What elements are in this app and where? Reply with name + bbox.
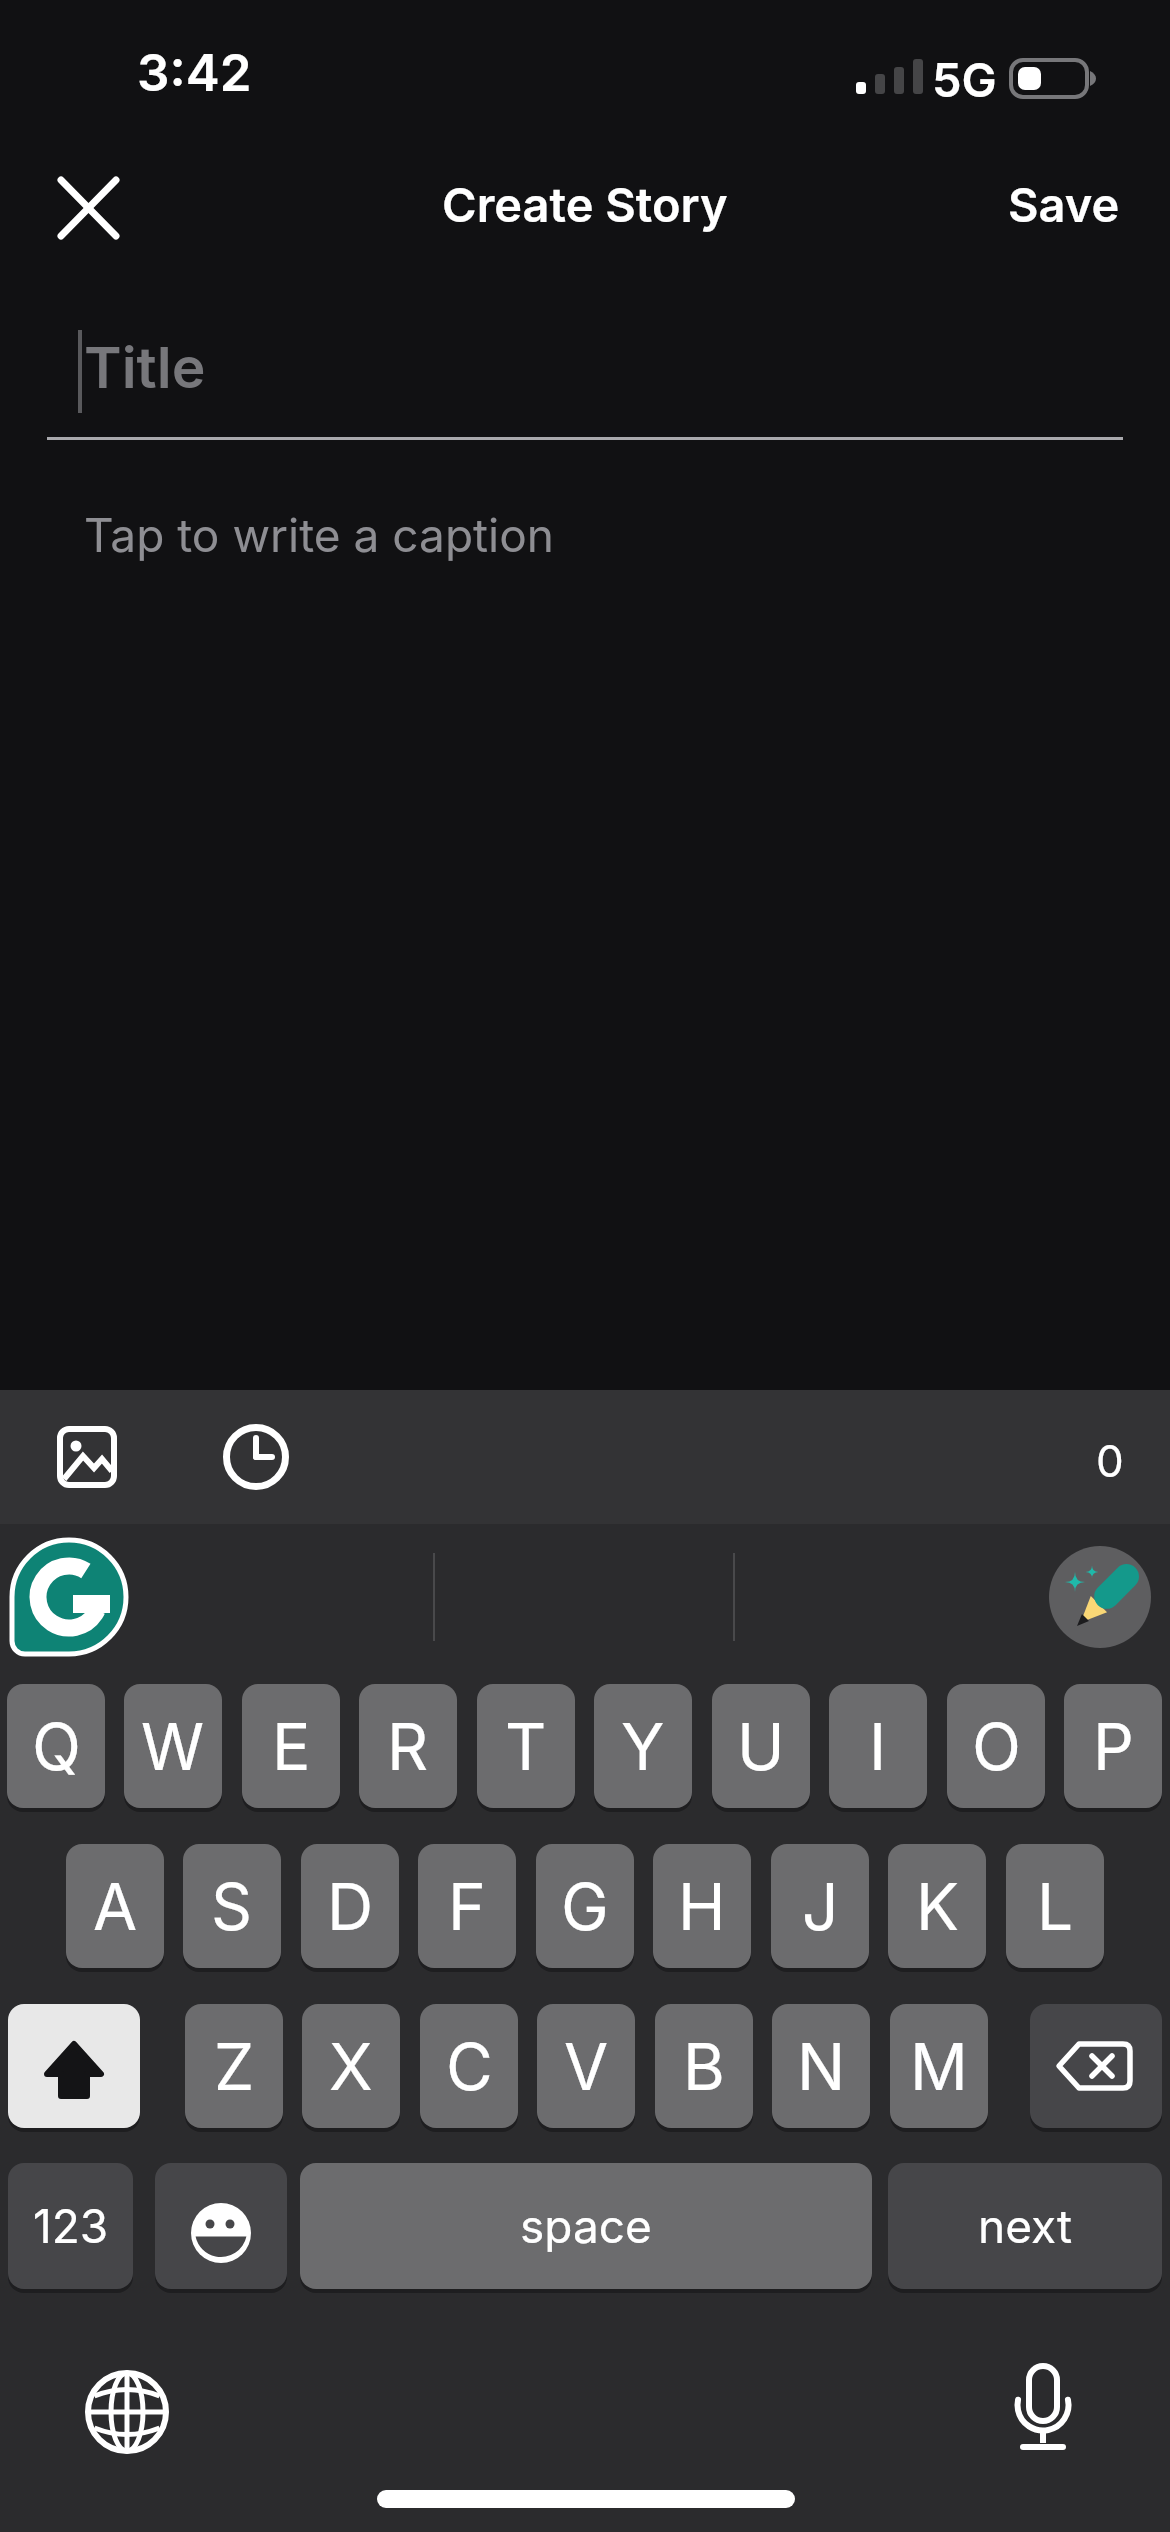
staticText: B <box>683 2028 725 2105</box>
button[interactable]: next <box>888 2163 1162 2289</box>
button[interactable] <box>30 1408 144 1506</box>
button[interactable]: M <box>890 2004 988 2128</box>
staticText: 123 <box>33 2198 109 2254</box>
staticText: X <box>329 2028 373 2105</box>
staticText: O <box>972 1708 1021 1785</box>
button[interactable]: A <box>66 1844 164 1968</box>
staticText: P <box>1093 1708 1134 1785</box>
button[interactable]: C <box>420 2004 518 2128</box>
staticText: 3:42 <box>137 42 252 104</box>
staticText: 5G <box>932 51 997 108</box>
staticText: F <box>448 1868 486 1945</box>
button[interactable]: R <box>359 1684 457 1808</box>
button[interactable] <box>1049 1546 1151 1648</box>
button[interactable]: E <box>242 1684 340 1808</box>
staticText: Create Story <box>442 176 728 233</box>
button[interactable]: P <box>1064 1684 1162 1808</box>
button[interactable]: V <box>537 2004 635 2128</box>
button[interactable]: G <box>536 1844 634 1968</box>
button[interactable]: Q <box>7 1684 105 1808</box>
button[interactable]: B <box>655 2004 753 2128</box>
button[interactable]: 123 <box>8 2163 133 2289</box>
staticText: E <box>272 1708 311 1785</box>
staticText: J <box>802 1868 839 1945</box>
button[interactable] <box>988 2353 1098 2463</box>
button[interactable]: Y <box>594 1684 692 1808</box>
button[interactable] <box>72 2357 182 2467</box>
staticText: next <box>978 2198 1073 2254</box>
button[interactable]: Save <box>1008 176 1120 233</box>
staticText: A <box>93 1868 138 1945</box>
button[interactable]: S <box>183 1844 281 1968</box>
button[interactable]: K <box>888 1844 986 1968</box>
button[interactable]: T <box>477 1684 575 1808</box>
staticText: V <box>564 2028 609 2105</box>
staticText: Q <box>32 1708 81 1785</box>
staticText: R <box>387 1708 429 1785</box>
button[interactable]: W <box>124 1684 222 1808</box>
staticText: K <box>916 1868 959 1945</box>
staticText: W <box>141 1708 205 1785</box>
staticText: D <box>327 1868 374 1945</box>
button[interactable]: Tap to write a caption <box>84 507 554 563</box>
staticText: C <box>446 2028 493 2105</box>
staticText: Title <box>84 333 206 402</box>
button[interactable] <box>196 1408 316 1506</box>
staticText: S <box>211 1868 253 1945</box>
button[interactable]: I <box>829 1684 927 1808</box>
button[interactable]: N <box>772 2004 870 2128</box>
staticText: space <box>520 2198 652 2254</box>
button[interactable]: J <box>771 1844 869 1968</box>
staticText: 0 <box>1096 1434 1124 1487</box>
staticText: G <box>561 1868 609 1945</box>
staticText: I <box>869 1708 887 1785</box>
button[interactable]: space <box>300 2163 872 2289</box>
button[interactable] <box>8 2004 140 2128</box>
button[interactable]: L <box>1006 1844 1104 1968</box>
button[interactable] <box>1030 2004 1162 2128</box>
staticText: M <box>910 2028 968 2105</box>
staticText: Y <box>621 1708 665 1785</box>
button[interactable]: O <box>947 1684 1045 1808</box>
button[interactable]: U <box>712 1684 810 1808</box>
button[interactable] <box>45 165 131 251</box>
staticText: N <box>797 2028 846 2105</box>
button[interactable]: X <box>302 2004 400 2128</box>
button[interactable]: D <box>301 1844 399 1968</box>
staticText: Z <box>214 2028 255 2105</box>
button[interactable] <box>155 2163 287 2289</box>
button[interactable]: Z <box>185 2004 283 2128</box>
staticText: H <box>678 1868 726 1945</box>
button[interactable]: F <box>418 1844 516 1968</box>
button[interactable]: H <box>653 1844 751 1968</box>
staticText: L <box>1037 1868 1074 1945</box>
button[interactable] <box>9 1537 129 1657</box>
staticText: T <box>505 1708 547 1785</box>
staticText: U <box>737 1708 785 1785</box>
